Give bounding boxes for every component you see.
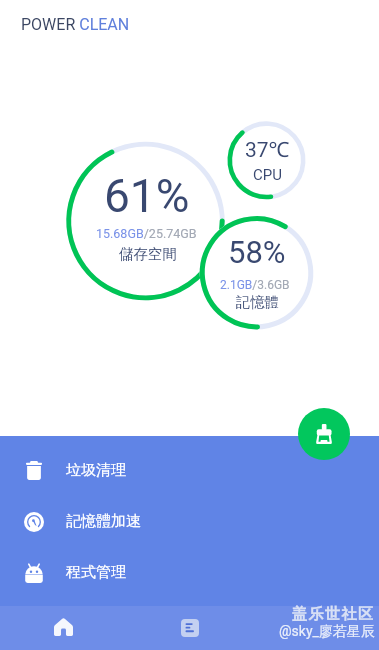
staticText: 58% <box>228 234 286 270</box>
staticText: 程式管理 <box>66 563 126 582</box>
staticText: 垃圾清理 <box>66 461 126 480</box>
staticText: CPU <box>253 166 282 184</box>
staticText: 記憶體加速 <box>66 512 141 531</box>
button[interactable]: 記憶體加速 <box>0 495 379 547</box>
staticText: 儲存空間 <box>119 245 177 263</box>
staticText: 盖乐世社区 <box>292 605 375 624</box>
button[interactable]: 程式管理 <box>0 546 379 598</box>
staticText: 2.1GB/3.6GB <box>220 278 290 292</box>
staticText: 37℃ <box>245 135 290 164</box>
staticText: 記憶體 <box>236 293 279 311</box>
button[interactable]: Settings <box>253 606 379 650</box>
button[interactable]: 垃圾清理 <box>0 444 379 496</box>
staticText: 15.68GB/25.74GB <box>96 226 197 241</box>
staticText: 61% <box>104 169 190 223</box>
button[interactable]: Home <box>0 606 127 650</box>
staticText: POWER CLEAN <box>21 15 130 34</box>
staticText: @sky_廖若星辰 <box>279 623 375 641</box>
button[interactable]: Reports <box>127 606 253 650</box>
button[interactable]: Clean <box>298 408 350 460</box>
